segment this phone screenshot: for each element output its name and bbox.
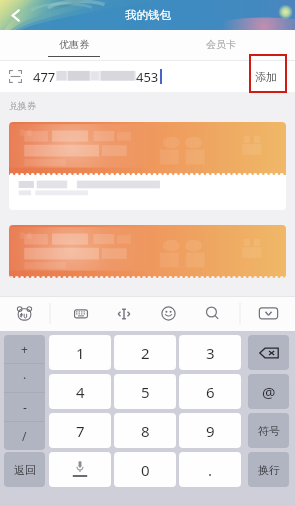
button[interactable]: 7 (49, 413, 111, 448)
button[interactable]: 返回 (4, 452, 45, 487)
staticText: 453 (136, 68, 159, 86)
button[interactable]: · (4, 364, 45, 392)
button[interactable]: 会员卡 (147, 30, 295, 61)
staticText: 会员卡 (206, 38, 236, 51)
button[interactable]: Keyboard (67, 296, 95, 331)
button[interactable]: 8 (114, 413, 176, 448)
staticText: 换行 (258, 463, 280, 477)
staticText: 添加 (255, 70, 277, 84)
button[interactable]: Space (49, 452, 111, 487)
staticText: @ (262, 382, 276, 402)
staticText: · (23, 370, 27, 386)
button[interactable]: Input method (10, 296, 38, 331)
button[interactable]: 符号 (248, 413, 289, 448)
staticText: 返回 (14, 463, 36, 477)
button[interactable]: 2 (114, 335, 176, 370)
button[interactable]: 换行 (248, 452, 289, 487)
button[interactable]: 添加 (246, 61, 286, 92)
staticText: 9 (206, 421, 215, 441)
staticText: 8 (141, 421, 150, 441)
button[interactable]: Search (198, 296, 226, 331)
staticText: 0 (141, 460, 150, 480)
button[interactable]: Move cursor (110, 296, 138, 331)
button[interactable]: Hide keyboard (254, 296, 282, 331)
button[interactable]: 6 (179, 374, 241, 409)
button[interactable] (9, 225, 286, 278)
button[interactable]: 0 (114, 452, 176, 487)
button[interactable]: Emoji (154, 296, 182, 331)
button[interactable]: Backspace (248, 335, 289, 370)
button[interactable]: 9 (179, 413, 241, 448)
button[interactable]: / (4, 422, 45, 450)
button[interactable]: + (4, 335, 45, 363)
button[interactable]: Back (3, 3, 27, 27)
staticText: 符号 (258, 424, 280, 438)
button[interactable]: 5 (114, 374, 176, 409)
button[interactable]: Scan card (9, 70, 22, 83)
staticText: 6 (206, 382, 215, 402)
staticText: 3 (206, 343, 215, 363)
button[interactable]: 3 (179, 335, 241, 370)
staticText: 优惠券 (59, 38, 89, 51)
button[interactable] (9, 122, 286, 210)
staticText: . (208, 460, 213, 480)
staticText: 2 (141, 343, 150, 363)
button[interactable]: 4 (49, 374, 111, 409)
button[interactable]: . (179, 452, 241, 487)
staticText: 4 (76, 382, 85, 402)
button[interactable]: @ (248, 374, 289, 409)
staticText: / (22, 428, 27, 444)
staticText: 5 (141, 382, 150, 402)
button[interactable]: 1 (49, 335, 111, 370)
staticText: 1 (76, 343, 85, 363)
staticText: - (23, 399, 27, 415)
staticText: 7 (76, 421, 85, 441)
staticText: 我的钱包 (125, 8, 171, 22)
staticText: 兑换券 (9, 100, 36, 111)
staticText: + (21, 341, 28, 357)
button[interactable]: 优惠券 (0, 30, 147, 61)
button[interactable]: - (4, 393, 45, 421)
staticText: 477 (33, 68, 56, 86)
